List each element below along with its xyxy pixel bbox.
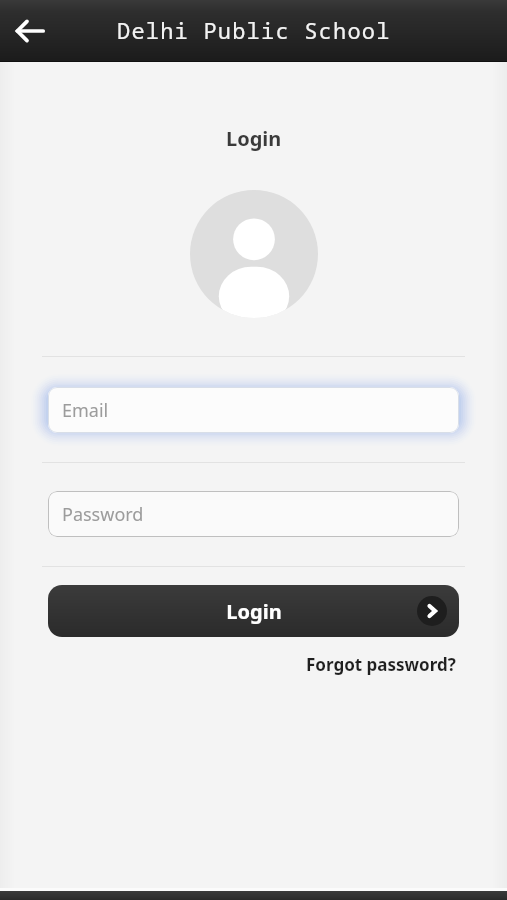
staticText: Delhi Public School <box>117 15 391 45</box>
staticText: Email <box>62 398 109 423</box>
button[interactable]: Email <box>48 387 459 433</box>
button[interactable]: Login <box>48 585 459 637</box>
staticText: Forgot password? <box>306 653 456 676</box>
button[interactable]: Forgot password? <box>304 651 458 678</box>
staticText: Login <box>226 125 282 152</box>
staticText: Password <box>62 502 144 527</box>
button[interactable]: Back <box>0 0 60 62</box>
staticText: Login <box>226 598 282 625</box>
button[interactable]: Password <box>48 491 459 537</box>
